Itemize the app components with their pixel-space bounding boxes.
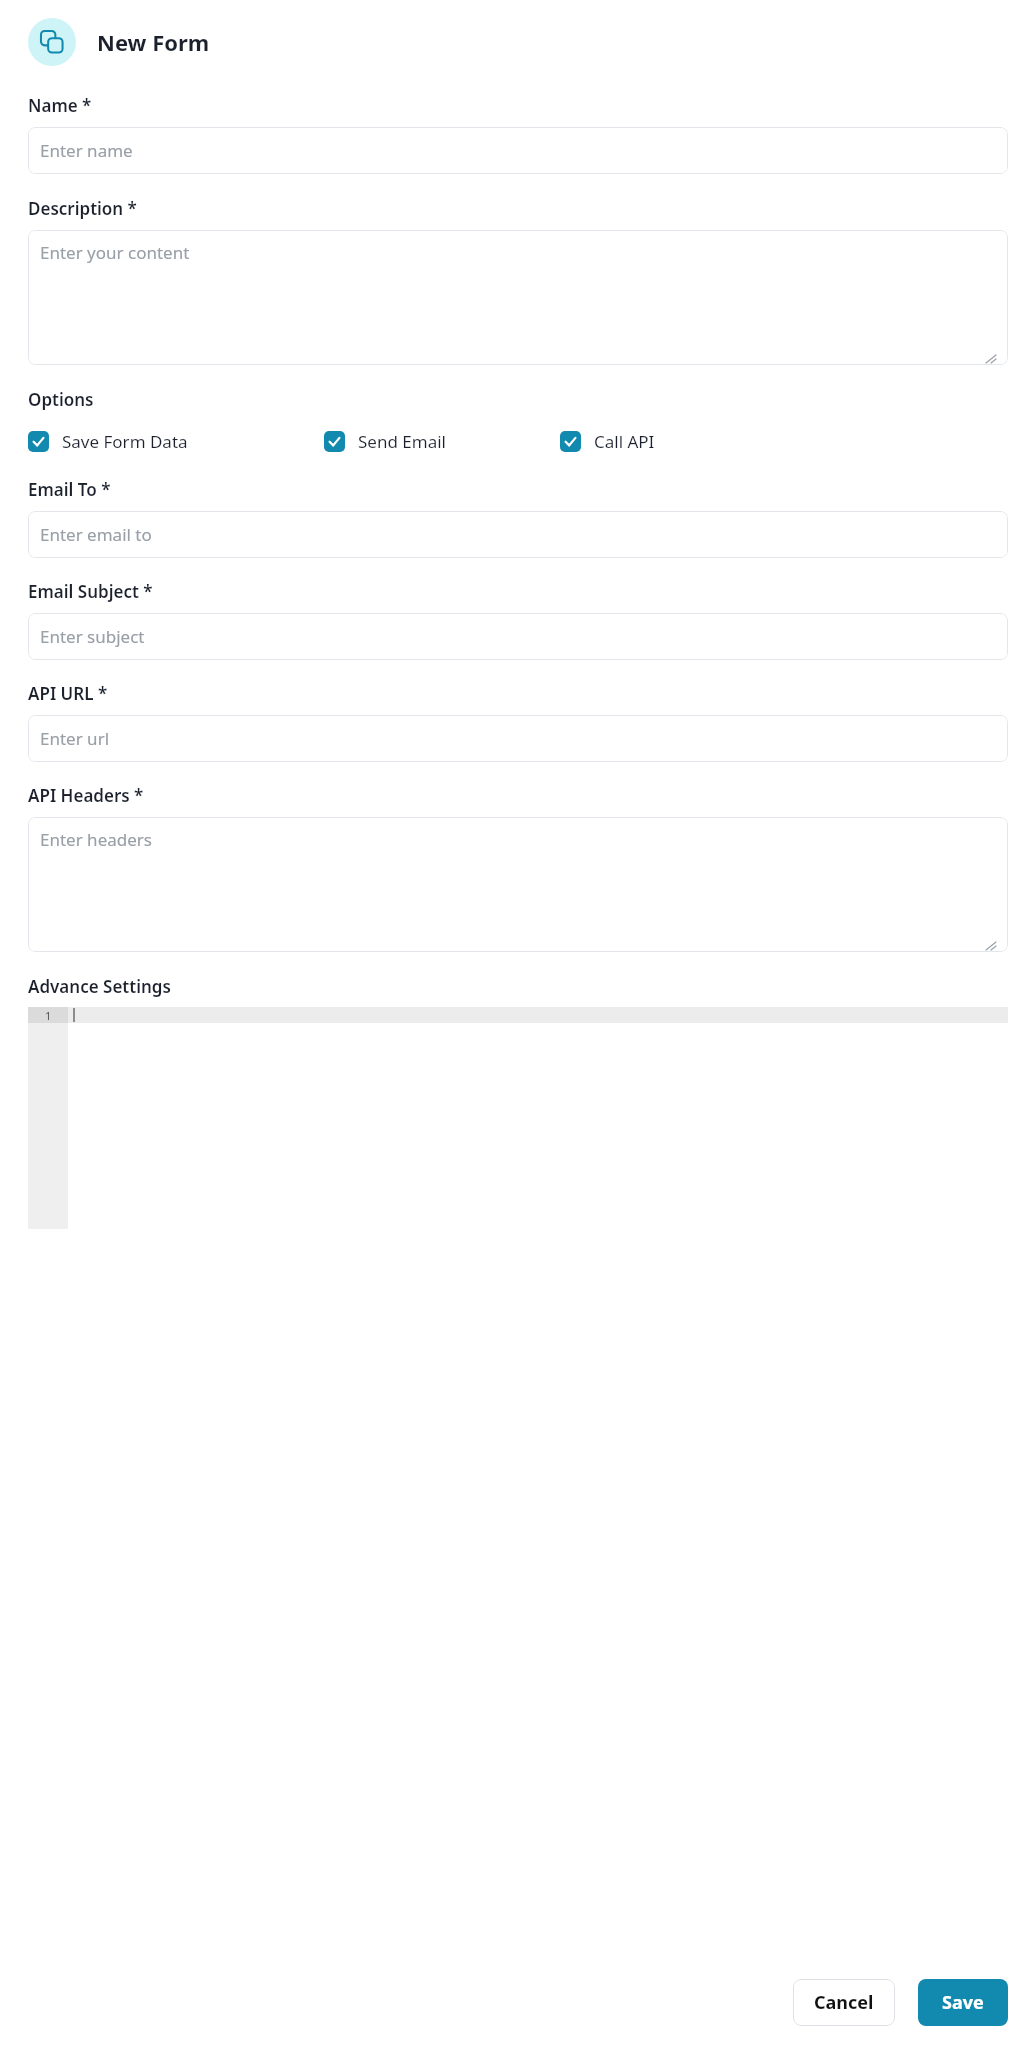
staticText: Enter subject [40,625,145,648]
staticText: Enter email to [40,523,152,546]
button[interactable]: Enter your content [28,230,1008,365]
staticText: 1 [45,1008,52,1023]
staticText: Call API [594,430,655,453]
staticText: Enter your content [40,241,190,264]
staticText: New Form [97,27,210,57]
button[interactable]: Save [918,1979,1008,2026]
staticText: API Headers * [28,784,144,807]
staticText: Cancel [814,1990,874,2015]
button[interactable]: Cancel [793,1979,895,2026]
staticText: Save Form Data [62,430,188,453]
staticText: Name * [28,94,92,117]
staticText: Send Email [358,430,446,453]
staticText: Options [28,388,94,411]
button[interactable]: Call API [560,430,655,453]
button[interactable]: Enter url [28,715,1008,762]
staticText: Email Subject * [28,580,153,603]
staticText: Enter headers [40,828,152,851]
staticText: Advance Settings [28,975,171,998]
other: Form icon [28,18,76,66]
button[interactable]: Enter subject [28,613,1008,660]
button[interactable]: Enter headers [28,817,1008,952]
button[interactable]: Enter email to [28,511,1008,558]
button[interactable]: Enter name [28,127,1008,174]
staticText: Description * [28,197,137,220]
button[interactable]: Send Email [324,430,446,453]
staticText: Enter name [40,139,133,162]
staticText: API URL * [28,682,108,705]
staticText: Email To * [28,478,111,501]
staticText: Enter url [40,727,110,750]
button[interactable]: 1 [28,1007,1008,1229]
button[interactable]: Save Form Data [28,430,188,453]
staticText: Save [942,1990,984,2015]
